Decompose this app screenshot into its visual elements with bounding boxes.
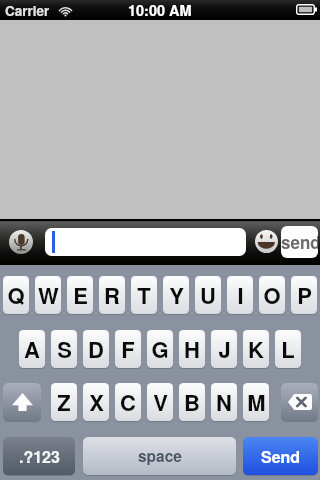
staticText: I [237, 279, 244, 311]
staticText: R [104, 279, 120, 311]
staticText: P [297, 279, 312, 311]
button[interactable]: Backspace [281, 383, 318, 421]
staticText: .?123 [19, 445, 60, 468]
button[interactable]: X [83, 383, 109, 421]
button[interactable]: Emoji [255, 230, 278, 253]
button[interactable]: L [275, 330, 301, 368]
button[interactable]: T [131, 276, 157, 314]
button[interactable]: send [281, 226, 318, 258]
button[interactable]: E [67, 276, 93, 314]
button[interactable]: Voice input [9, 230, 33, 254]
button[interactable]: Y [163, 276, 189, 314]
button[interactable]: D [83, 330, 109, 368]
staticText: 10:00 AM [128, 0, 192, 20]
button[interactable]: .?123 [3, 437, 75, 475]
staticText: U [200, 279, 216, 311]
staticText: S [57, 333, 72, 365]
staticText: send [281, 230, 318, 254]
staticText: Q [7, 279, 25, 311]
staticText: W [38, 279, 59, 311]
staticText: Carrier [5, 1, 50, 20]
staticText: K [248, 333, 264, 365]
staticText: C [120, 386, 136, 418]
staticText: T [137, 279, 151, 311]
button[interactable]: W [35, 276, 61, 314]
button[interactable]: V [147, 383, 173, 421]
staticText: L [281, 333, 295, 365]
button[interactable]: G [147, 330, 173, 368]
button[interactable]: H [179, 330, 205, 368]
staticText: X [89, 386, 104, 418]
button[interactable]: Q [3, 276, 29, 314]
staticText: B [184, 386, 200, 418]
staticText: O [263, 279, 281, 311]
staticText: H [184, 333, 200, 365]
staticText: J [218, 333, 231, 365]
staticText: E [73, 279, 88, 311]
staticText: F [121, 333, 135, 365]
staticText: Z [57, 386, 71, 418]
button[interactable]: M [243, 383, 269, 421]
button[interactable]: A [19, 330, 45, 368]
button[interactable]: J [211, 330, 237, 368]
button[interactable]: space [83, 437, 236, 475]
button[interactable]: Send [243, 437, 318, 475]
button[interactable]: S [51, 330, 77, 368]
button[interactable]: P [291, 276, 317, 314]
button[interactable]: R [99, 276, 125, 314]
button[interactable]: B [179, 383, 205, 421]
staticText: Send [261, 445, 301, 468]
staticText: space [138, 445, 182, 467]
button[interactable]: F [115, 330, 141, 368]
button[interactable]: C [115, 383, 141, 421]
staticText: M [247, 386, 266, 418]
button[interactable]: Z [51, 383, 77, 421]
button[interactable]: I [227, 276, 253, 314]
staticText: D [88, 333, 104, 365]
button[interactable]: U [195, 276, 221, 314]
button[interactable]: N [211, 383, 237, 421]
staticText: G [151, 333, 169, 365]
button[interactable]: K [243, 330, 269, 368]
button[interactable]: Shift [3, 383, 41, 421]
staticText: V [153, 386, 168, 418]
staticText: N [216, 386, 232, 418]
button[interactable] [45, 228, 246, 256]
button[interactable]: O [259, 276, 285, 314]
staticText: Y [169, 279, 184, 311]
staticText: A [24, 333, 40, 365]
